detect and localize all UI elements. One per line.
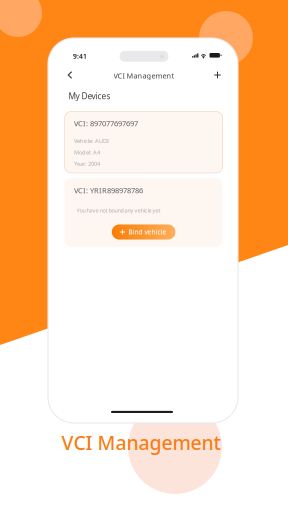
staticText: VCI: 897077697697 <box>74 118 138 128</box>
button[interactable]: Back <box>62 65 78 85</box>
button[interactable]: Add device <box>209 65 225 85</box>
staticText: Bind vehicle <box>128 228 166 236</box>
staticText: VCI Management <box>113 71 174 81</box>
staticText: Vehicle: AUDI <box>74 137 109 145</box>
button[interactable]: Bind vehicle <box>112 224 175 239</box>
staticText: VCI Management <box>61 429 220 456</box>
staticText: My Devices <box>68 90 110 102</box>
staticText: VCI: YRIR898978786 <box>74 185 143 195</box>
staticText: 9:41 <box>73 52 87 61</box>
staticText: Model: A4 <box>74 148 100 156</box>
staticText: Year: 2004 <box>74 160 100 167</box>
staticText: You have not bound any vehicle yet <box>77 207 161 214</box>
